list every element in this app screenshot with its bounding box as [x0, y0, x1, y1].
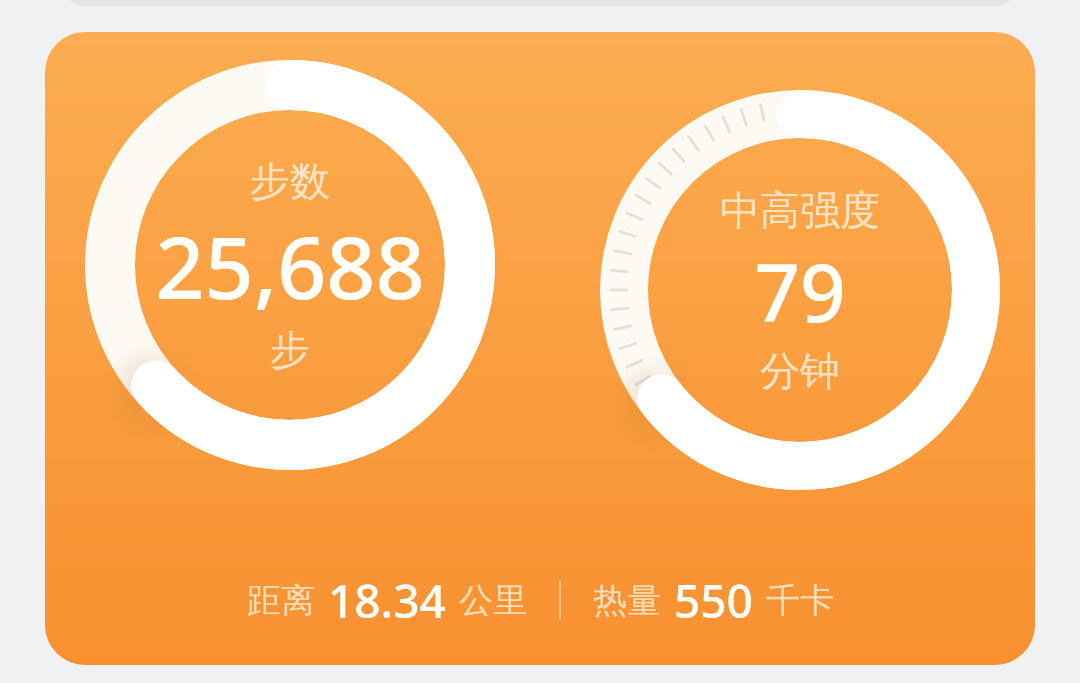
staticText: 步	[270, 325, 310, 375]
staticText: 25,688	[155, 207, 425, 324]
staticText: 18.34	[328, 569, 446, 632]
staticText: 公里	[459, 579, 527, 622]
button[interactable]: 步数 25,688 步	[85, 60, 495, 470]
staticText: 79	[754, 236, 846, 345]
staticText: 分钟	[760, 346, 840, 396]
button[interactable]: 步数 25,688 步	[45, 32, 1035, 665]
staticText: 步数	[250, 156, 330, 206]
staticText: 中高强度	[720, 185, 880, 235]
staticText: 550	[674, 569, 753, 632]
staticText: 千卡	[766, 579, 834, 622]
button[interactable]: 距离	[45, 560, 1035, 640]
staticText: 距离	[247, 579, 315, 622]
staticText: 热量	[593, 579, 661, 622]
button[interactable]: 中高强度 79 分钟	[600, 90, 1000, 490]
